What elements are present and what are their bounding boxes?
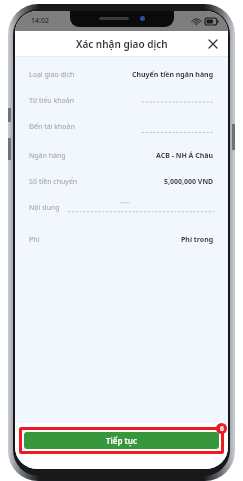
staticText: Chuyển tiền ngân hàng (132, 70, 214, 80)
button[interactable]: Tiếp tục (24, 432, 219, 449)
staticText: ACB - NH Á Châu (156, 151, 214, 161)
staticText: Đến tài khoản (29, 122, 75, 132)
staticText: 14:02 (31, 16, 49, 26)
staticText: 5,000,000 VND (164, 177, 214, 187)
staticText: Loại giao dịch (29, 70, 75, 80)
staticText: 6 (220, 424, 224, 433)
staticText: Số tiền chuyển (29, 177, 78, 187)
staticText: Ngân hàng (29, 151, 66, 161)
staticText: Xác nhận giao dịch (76, 37, 168, 51)
staticText: Phí trong (181, 235, 214, 245)
staticText: Tiếp tục (106, 435, 137, 446)
staticText: Nội dung (29, 203, 60, 213)
staticText: Phí (29, 235, 40, 245)
button[interactable]: Close (204, 35, 222, 53)
staticText: Từ tiểu khoản (29, 96, 75, 106)
